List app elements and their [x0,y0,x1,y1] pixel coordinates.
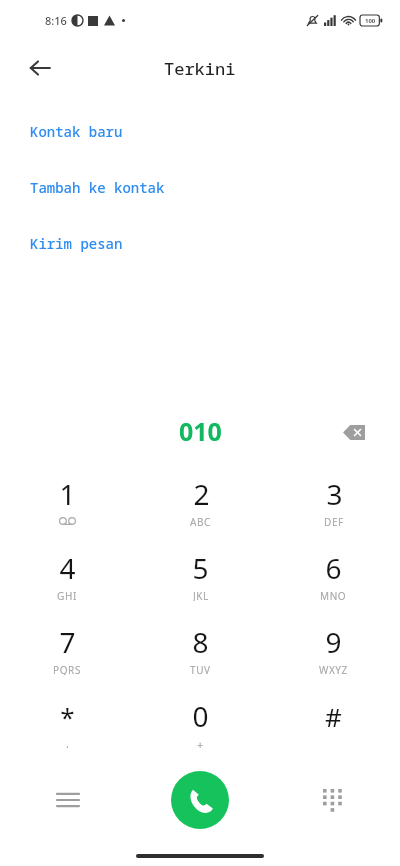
button[interactable]: 9 [267,612,400,686]
staticText: WXYZ [319,663,348,675]
staticText: PQRS [53,663,81,675]
staticText: 6 [325,549,342,587]
button[interactable]: 5 [134,538,267,612]
button[interactable]: # [267,686,400,760]
button[interactable]: Tambah ke kontak [30,174,400,200]
staticText: ABC [190,515,212,527]
button[interactable]: Kontak baru [30,118,400,144]
staticText: Terkini [164,57,236,80]
staticText: 010 [179,414,222,448]
staticText: DEF [324,515,344,527]
button[interactable]: Backspace [334,412,374,452]
staticText: GHI [57,589,77,601]
staticText: TUV [190,663,211,675]
staticText: 9 [325,623,342,661]
staticText: Kontak baru [30,122,123,141]
button[interactable]: Call [171,771,229,829]
button[interactable]: 7 [0,612,134,686]
staticText: 100 [365,17,376,25]
button[interactable]: 2 [134,464,267,538]
button[interactable]: 8 [134,612,267,686]
button[interactable]: Back [20,48,60,88]
button[interactable]: Menu [46,778,90,822]
button[interactable]: 4 [0,538,134,612]
staticText: 1 [59,475,76,513]
staticText: 0 [192,697,209,735]
staticText: , [66,736,70,748]
button[interactable]: Dialpad [310,778,354,822]
button[interactable]: * [0,686,134,760]
staticText: # [325,699,342,734]
staticText: 8 [192,623,209,661]
staticText: 7 [59,623,76,661]
button[interactable]: Kirim pesan [30,230,400,256]
staticText: + [197,737,204,749]
button[interactable]: 0 [134,686,267,760]
staticText: * [60,699,75,734]
staticText: 5 [192,549,209,587]
button[interactable]: 1 [0,464,134,538]
staticText: 8:16 [45,13,67,28]
staticText: 2 [193,475,210,513]
staticText: MNO [320,589,347,601]
staticText: Kirim pesan [30,234,123,253]
button[interactable]: 3 [267,464,400,538]
button[interactable]: 6 [267,538,400,612]
staticText: 3 [326,475,343,513]
staticText: 4 [59,549,76,587]
staticText: JKL [193,589,209,601]
staticText: Tambah ke kontak [30,178,165,197]
